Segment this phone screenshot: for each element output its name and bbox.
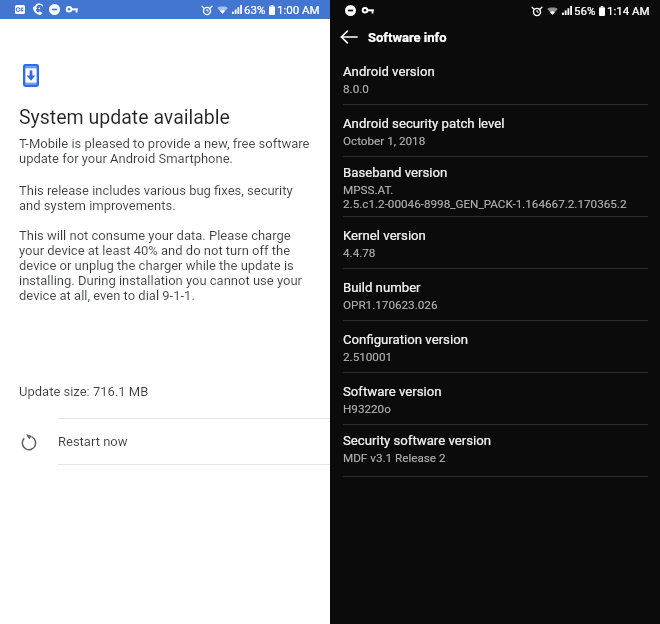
- staticText: Android security patch level: [343, 116, 505, 131]
- staticText: Security software version: [343, 433, 491, 448]
- staticText: 4.4.78: [343, 246, 376, 260]
- staticText: 56%: [574, 4, 596, 17]
- staticText: Restart now: [58, 434, 128, 449]
- staticText: This release includes various bug fixes,…: [19, 183, 311, 213]
- staticText: System update available: [19, 106, 230, 129]
- staticText: 2.5.c1.2-00046-8998_GEN_PACK-1.164667.2.…: [343, 197, 627, 211]
- staticText: H93220o: [343, 402, 391, 416]
- button[interactable]: Navigate up: [330, 20, 368, 54]
- button[interactable]: Build number: [330, 269, 660, 321]
- staticText: 2.510001: [343, 350, 393, 364]
- staticText: Kernel version: [343, 228, 426, 243]
- button[interactable]: Baseband version: [330, 157, 660, 217]
- staticText: 63%: [244, 3, 266, 16]
- staticText: MDF v3.1 Release 2: [343, 451, 446, 465]
- staticText: Configuration version: [343, 332, 468, 347]
- staticText: Software info: [368, 30, 447, 45]
- staticText: MPSS.AT.: [343, 183, 394, 197]
- staticText: Baseband version: [343, 165, 448, 180]
- staticText: T-Mobile is pleased to provide a new, fr…: [19, 136, 311, 166]
- staticText: October 1, 2018: [343, 134, 426, 148]
- button[interactable]: Configuration version: [330, 321, 660, 373]
- staticText: Build number: [343, 280, 421, 295]
- staticText: Software version: [343, 384, 442, 399]
- staticText: Update size: 716.1 MB: [19, 384, 149, 399]
- staticText: 1:00 AM: [277, 3, 320, 16]
- button[interactable]: Android security patch level: [330, 105, 660, 157]
- button[interactable]: Security software version: [330, 425, 660, 477]
- button[interactable]: Kernel version: [330, 217, 660, 269]
- staticText: This will not consume your data. Please …: [19, 228, 311, 303]
- staticText: OPR1.170623.026: [343, 298, 438, 312]
- button[interactable]: Software version: [330, 373, 660, 425]
- staticText: Android version: [343, 64, 435, 79]
- button[interactable]: Restart now: [0, 419, 330, 464]
- staticText: 8.0.0: [343, 82, 369, 96]
- staticText: 1:14 AM: [607, 4, 650, 17]
- button[interactable]: Android version: [330, 53, 660, 105]
